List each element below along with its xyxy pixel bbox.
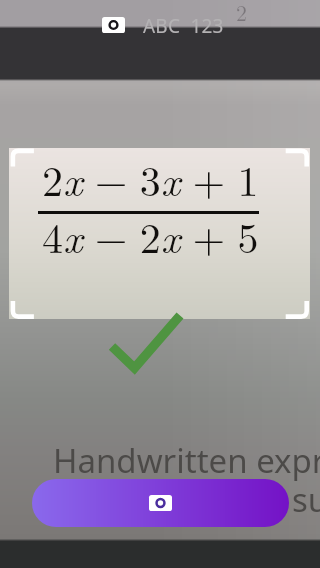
staticText: supported <box>292 477 320 522</box>
staticText: 4x − 2x + 5 <box>42 206 259 266</box>
staticText: Handwritten expression <box>53 438 320 483</box>
button[interactable]: Scan with camera <box>32 479 289 527</box>
button[interactable]: Camera <box>102 17 125 33</box>
staticText: ABC 123 <box>143 13 224 39</box>
staticText: 2 <box>236 0 248 27</box>
staticText: 2x − 3x + 1 <box>42 149 259 209</box>
